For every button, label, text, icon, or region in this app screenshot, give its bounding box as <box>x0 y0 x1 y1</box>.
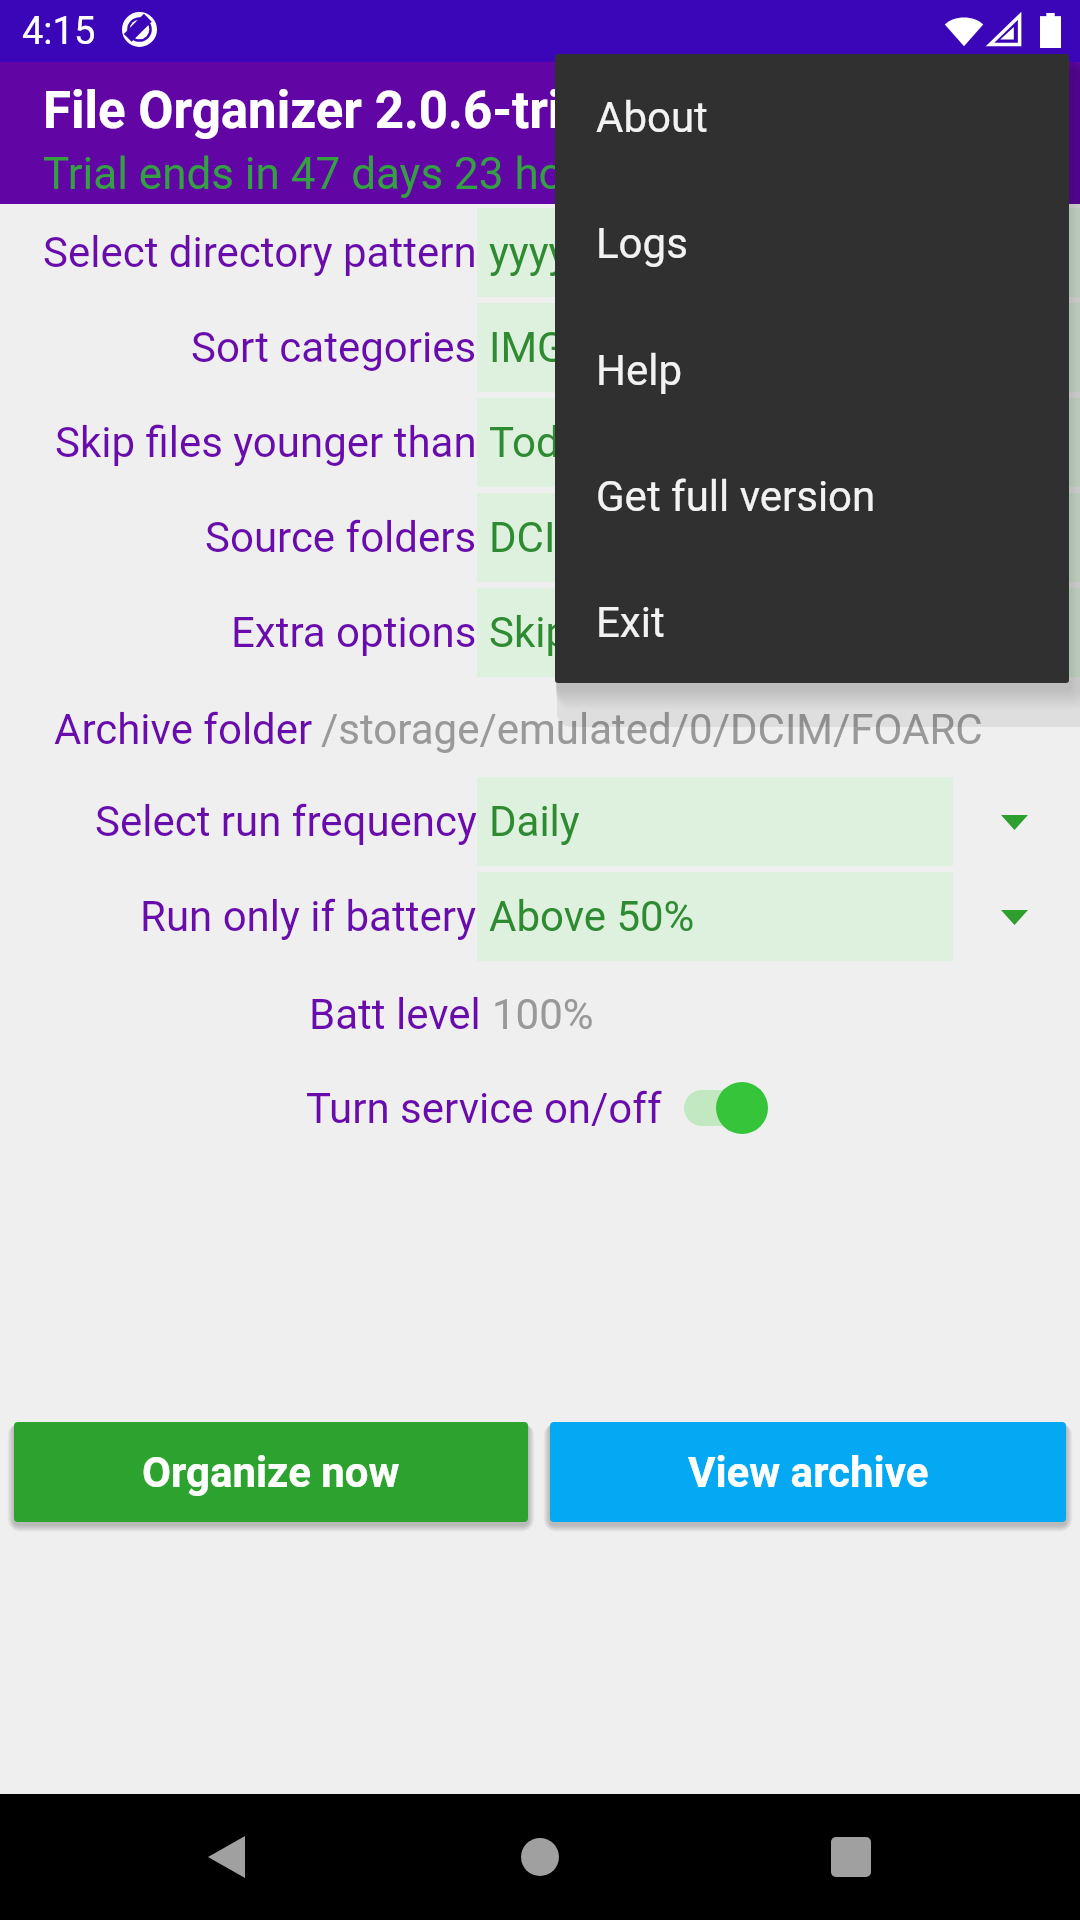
staticText: Exit <box>596 598 665 647</box>
button[interactable]: Home <box>480 1797 600 1917</box>
button[interactable]: Logs <box>555 180 1069 306</box>
staticText: Sort categories <box>191 323 477 372</box>
staticText: Select directory pattern <box>43 228 477 277</box>
staticText: Source folders <box>205 513 477 562</box>
button[interactable]: Organize now <box>14 1422 528 1522</box>
button[interactable]: Skip files younger than <box>0 398 1080 487</box>
button[interactable]: Back <box>166 1797 286 1917</box>
staticText: Batt level <box>309 990 492 1039</box>
button[interactable]: Exit <box>555 559 1069 683</box>
staticText: /storage/emulated/0/DCIM/FOARC <box>321 705 983 754</box>
staticText: Select run frequency <box>95 797 477 846</box>
button[interactable]: Recent apps <box>791 1797 911 1917</box>
staticText: Archive folder <box>54 705 313 754</box>
button[interactable]: Sort categories <box>0 303 1080 392</box>
staticText: Logs <box>596 219 688 268</box>
staticText: File Organizer 2.0.6-trial <box>43 81 603 141</box>
staticText: IMG, VID, AUD <box>489 323 749 372</box>
staticText: 4:15 <box>22 9 96 54</box>
staticText: Trial ends in 47 days 23 hours <box>43 148 626 200</box>
staticText: Above 50% <box>489 892 695 941</box>
button[interactable]: About <box>555 54 1069 180</box>
button[interactable]: Help <box>555 307 1069 433</box>
button[interactable]: Get full version <box>555 433 1069 559</box>
staticText: Daily <box>489 797 580 846</box>
staticText: yyyy-MM-dd <box>489 228 713 277</box>
button[interactable]: Turn service on/off <box>306 1065 770 1151</box>
button[interactable]: View archive <box>550 1422 1066 1522</box>
staticText: Skip files younger than <box>55 418 477 467</box>
staticText: About <box>596 93 708 142</box>
staticText: View archive <box>688 1448 929 1497</box>
staticText: Turn service on/off <box>306 1084 662 1133</box>
staticText: 100% <box>492 990 594 1039</box>
staticText: Organize now <box>142 1448 400 1497</box>
staticText: Run only if battery <box>140 892 477 941</box>
staticText: Get full version <box>596 472 876 521</box>
button[interactable]: Source folders <box>0 493 1080 582</box>
staticText: DCIM, Download <box>489 513 798 562</box>
button[interactable]: Select directory pattern <box>0 208 1080 297</box>
button[interactable]: Archive folder <box>0 686 1080 772</box>
staticText: Skip hidden <box>489 608 706 657</box>
button[interactable]: Select run frequency <box>0 777 1080 866</box>
staticText: Extra options <box>231 608 477 657</box>
staticText: Today <box>489 418 603 467</box>
staticText: Help <box>596 346 683 395</box>
button[interactable]: Run only if battery <box>0 872 1080 961</box>
button[interactable]: Extra options <box>0 588 1080 677</box>
